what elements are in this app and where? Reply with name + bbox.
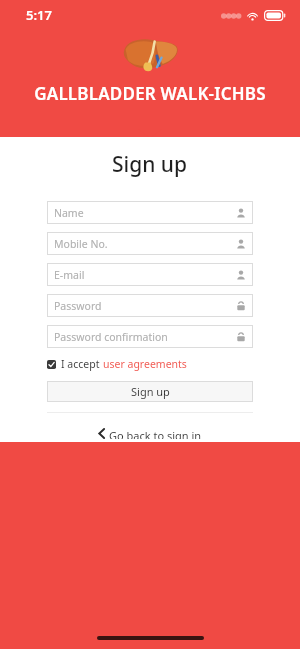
button[interactable]: Go back to sign in [91, 425, 210, 442]
staticText: E-mail [54, 268, 236, 282]
button[interactable]: I accept [47, 357, 253, 371]
button[interactable]: Password confirmation [47, 325, 253, 348]
staticText: Name [54, 206, 236, 220]
staticText: 5:17 [26, 6, 52, 24]
button[interactable]: Name [47, 201, 253, 224]
staticText: Password [54, 299, 236, 313]
button[interactable]: Password [47, 294, 253, 317]
staticText: GALLBLADDER WALK-ICHBS [34, 82, 266, 105]
staticText: Password confirmation [54, 330, 236, 344]
staticText: user agreements [103, 357, 187, 371]
button[interactable]: Sign up [47, 381, 253, 402]
button[interactable]: E-mail [47, 263, 253, 286]
staticText: Mobile No. [54, 237, 236, 251]
staticText: I accept [61, 357, 103, 371]
staticText: Sign up [131, 384, 170, 399]
staticText: Go back to sign in [109, 428, 202, 439]
button[interactable]: Mobile No. [47, 232, 253, 255]
staticText: Sign up [112, 150, 188, 179]
